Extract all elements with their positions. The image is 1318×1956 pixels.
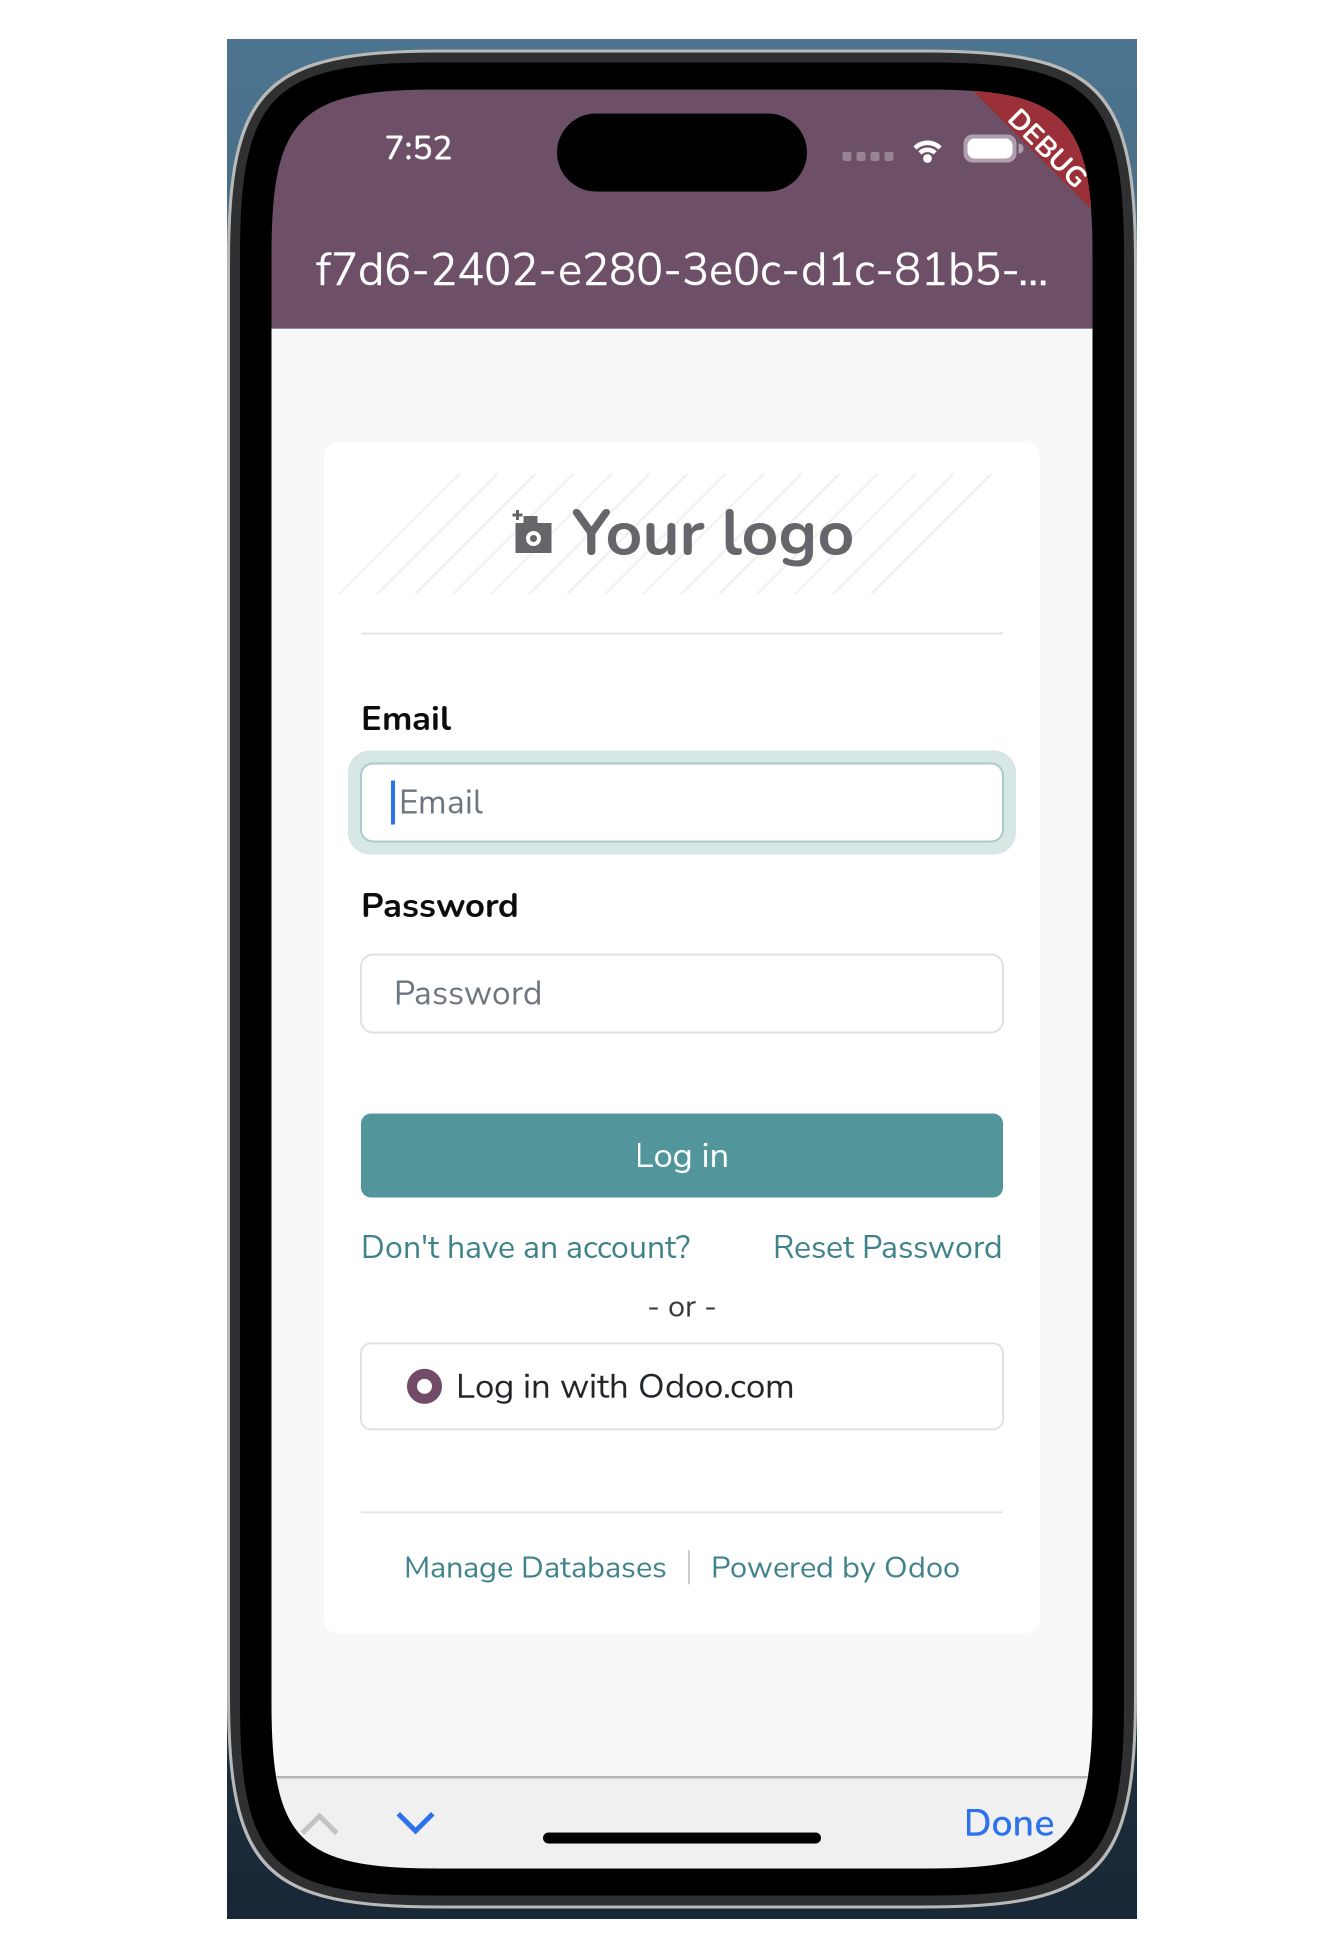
button[interactable]: Log in (361, 1113, 1003, 1197)
button[interactable]: Done (963, 1798, 1092, 1849)
staticText: Reset Password (773, 1226, 1003, 1269)
staticText: Done (963, 1798, 1054, 1849)
staticText: 7:52 (384, 126, 452, 171)
staticText: Powered by Odoo (711, 1546, 960, 1588)
staticText: Log in with Odoo.com (456, 1363, 795, 1410)
button[interactable]: Don't have an account? (361, 1226, 690, 1269)
staticText: Your logo (571, 490, 854, 577)
staticText: DEBUG (998, 129, 1097, 168)
staticText: f7d6-2402-e280-3e0c-d1c-81b5-... (316, 239, 1048, 301)
button[interactable]: Reset Password (773, 1226, 1003, 1269)
button[interactable]: Previous field (271, 1778, 367, 1868)
button[interactable]: Log in with Odoo.com (361, 1343, 1003, 1429)
staticText: Don't have an account? (361, 1226, 690, 1269)
staticText: Password (361, 882, 519, 929)
button[interactable]: Manage Databases (404, 1546, 667, 1588)
staticText: Log in (634, 1132, 729, 1179)
staticText: Email (399, 780, 483, 825)
staticText: - or - (647, 1285, 717, 1327)
staticText: Password (394, 971, 542, 1016)
button[interactable]: Next field (367, 1778, 463, 1868)
staticText: Manage Databases (404, 1546, 667, 1588)
button[interactable]: Powered by Odoo (711, 1546, 960, 1588)
staticText: Email (361, 695, 451, 742)
